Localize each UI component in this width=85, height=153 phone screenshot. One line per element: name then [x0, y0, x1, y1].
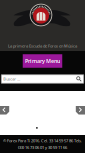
staticText: © Forex Para Ti 2016. Cel. 33 14 59 57 8… — [3, 138, 82, 143]
button[interactable]: Next slide — [76, 106, 85, 114]
staticText: La primera Escuela de Foros en Música — [8, 43, 77, 48]
staticText: Buscar ... — [3, 76, 20, 82]
staticText: (33) 16 73 06 01 y 30 59 11 66 — [18, 145, 67, 150]
button[interactable]: Primary Menu — [23, 54, 62, 68]
staticText: Primary Menu — [25, 57, 60, 65]
button[interactable]: Previous slide — [0, 106, 9, 114]
